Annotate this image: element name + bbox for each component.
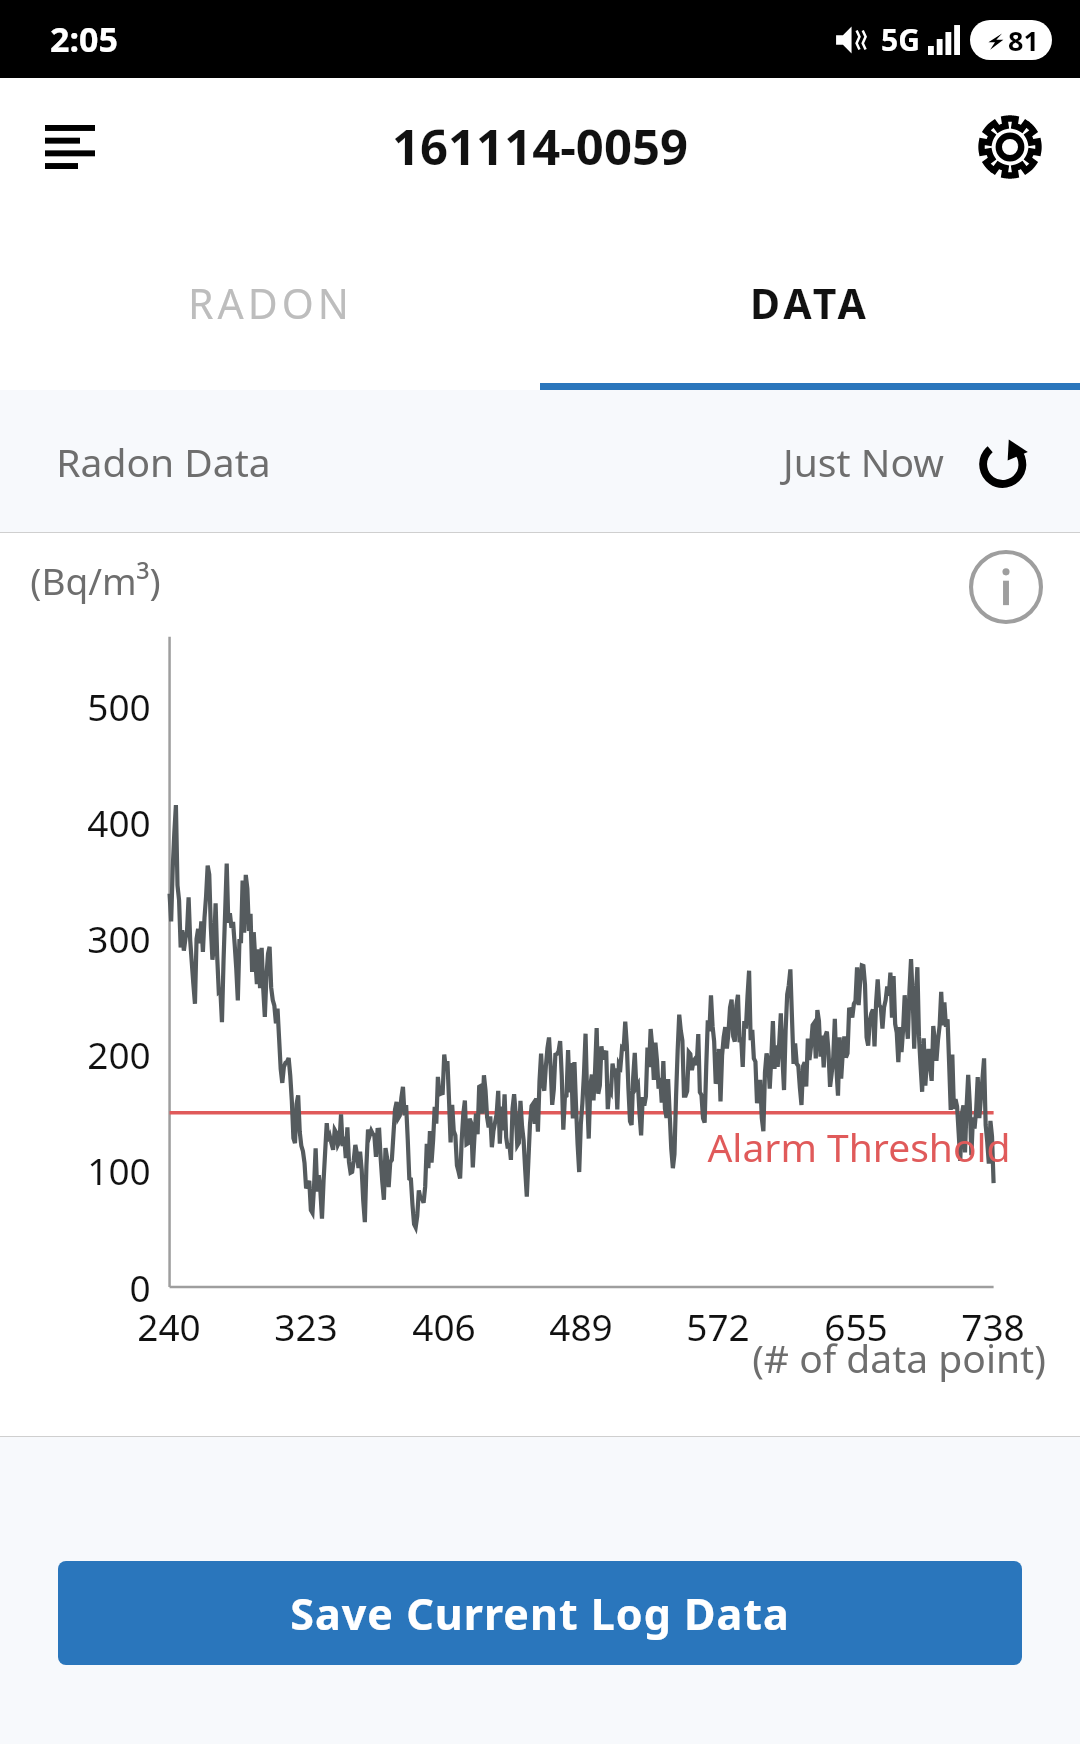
staticText: 300 [87, 913, 151, 963]
button[interactable]: Menu [26, 103, 114, 191]
button[interactable]: Settings [962, 99, 1058, 195]
staticText: 161114-0059 [392, 113, 688, 180]
button[interactable]: Refresh [966, 422, 1044, 500]
staticText: (Bq/m³) [30, 555, 161, 605]
staticText: 655 [824, 1301, 888, 1351]
staticText: 738 [961, 1301, 1025, 1351]
staticText: Just Now [783, 435, 944, 488]
button[interactable]: Save Current Log Data [58, 1561, 1022, 1665]
staticText: 406 [412, 1301, 476, 1351]
button[interactable]: DATA [540, 215, 1080, 390]
staticText: 500 [87, 681, 151, 731]
staticText: Save Current Log Data [290, 1584, 790, 1643]
staticText: (# of data point) [752, 1331, 1046, 1384]
staticText: RADON [188, 275, 353, 331]
staticText: 572 [686, 1301, 750, 1351]
staticText: 489 [549, 1301, 613, 1351]
staticText: 5G [881, 19, 920, 60]
staticText: 323 [274, 1301, 338, 1351]
button[interactable]: RADON [0, 215, 540, 390]
staticText: 240 [137, 1301, 201, 1351]
staticText: 81 [1008, 22, 1039, 59]
staticText: DATA [750, 275, 870, 331]
staticText: 2:05 [50, 16, 118, 62]
staticText: 200 [87, 1029, 151, 1079]
staticText: 0 [129, 1262, 151, 1312]
staticText: 400 [87, 797, 151, 847]
button[interactable]: Info [958, 539, 1054, 635]
staticText: 100 [87, 1145, 151, 1195]
staticText: Alarm Threshold [707, 1120, 1011, 1173]
staticText: Radon Data [56, 435, 271, 488]
